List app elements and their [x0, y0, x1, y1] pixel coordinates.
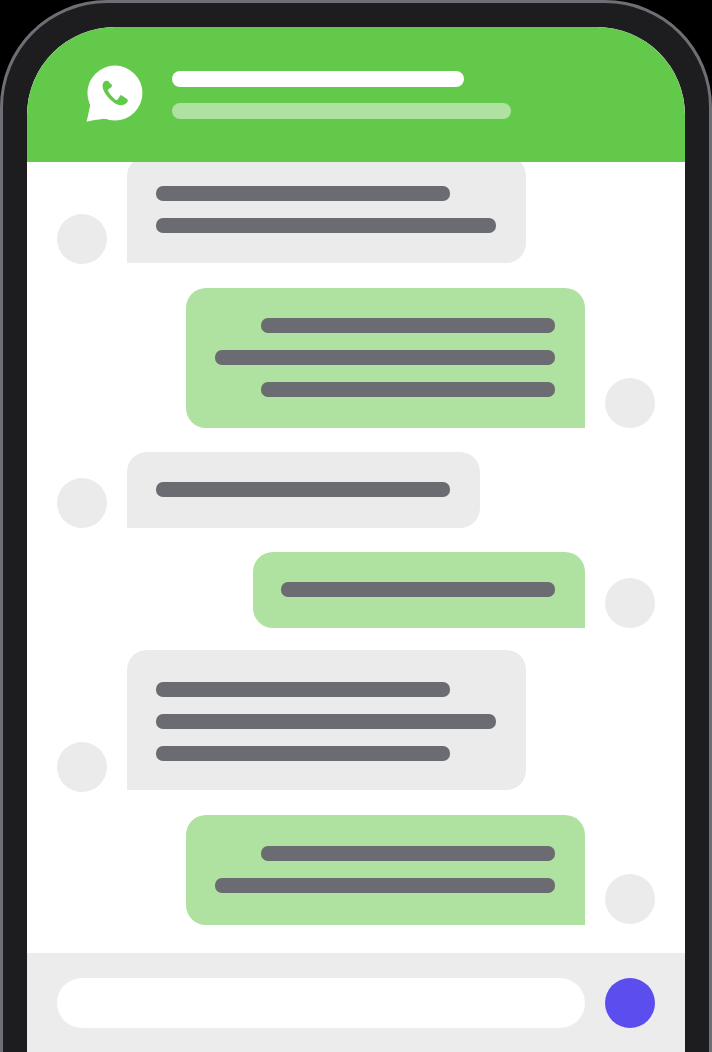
button[interactable]: WhatsApp [86, 65, 143, 122]
button[interactable]: Contact avatar [605, 874, 655, 924]
button[interactable]: Received message [127, 156, 526, 263]
button[interactable]: Sent message [186, 815, 585, 925]
button[interactable]: Send [605, 978, 655, 1028]
button[interactable]: Contact avatar [57, 478, 107, 528]
button[interactable]: Contact avatar [605, 378, 655, 428]
button[interactable]: Received message [127, 452, 480, 528]
button[interactable]: Received message [127, 650, 526, 790]
button[interactable]: Sent message [253, 552, 585, 628]
button[interactable]: Contact info [172, 66, 511, 122]
button[interactable]: Sent message [186, 288, 585, 428]
button[interactable]: Contact avatar [57, 214, 107, 264]
button[interactable]: Contact avatar [57, 742, 107, 792]
button[interactable]: Contact avatar [605, 578, 655, 628]
